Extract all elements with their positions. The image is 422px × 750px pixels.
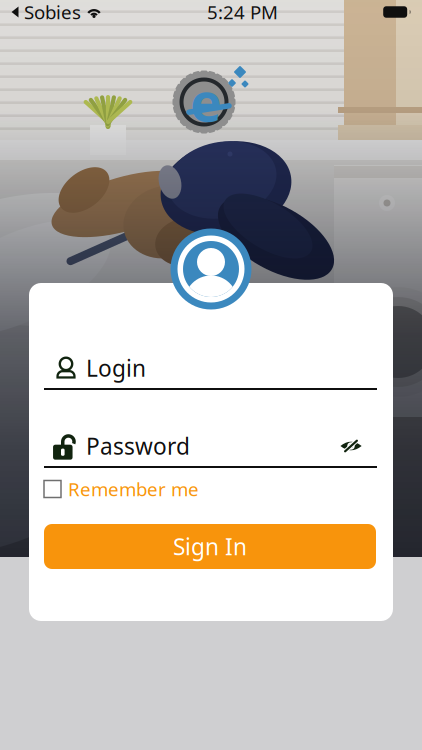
button[interactable]: Show password	[329, 433, 373, 459]
button[interactable]: Sign In	[44, 524, 376, 569]
staticText: Sobies	[24, 0, 81, 24]
staticText: e	[190, 66, 222, 136]
staticText: Login	[86, 353, 146, 383]
button[interactable]: Remember me	[44, 478, 377, 500]
staticText: Sign In	[173, 531, 247, 561]
staticText: Remember me	[68, 477, 199, 501]
staticText: Password	[86, 431, 190, 461]
staticText: 5:24 PM	[207, 0, 278, 24]
